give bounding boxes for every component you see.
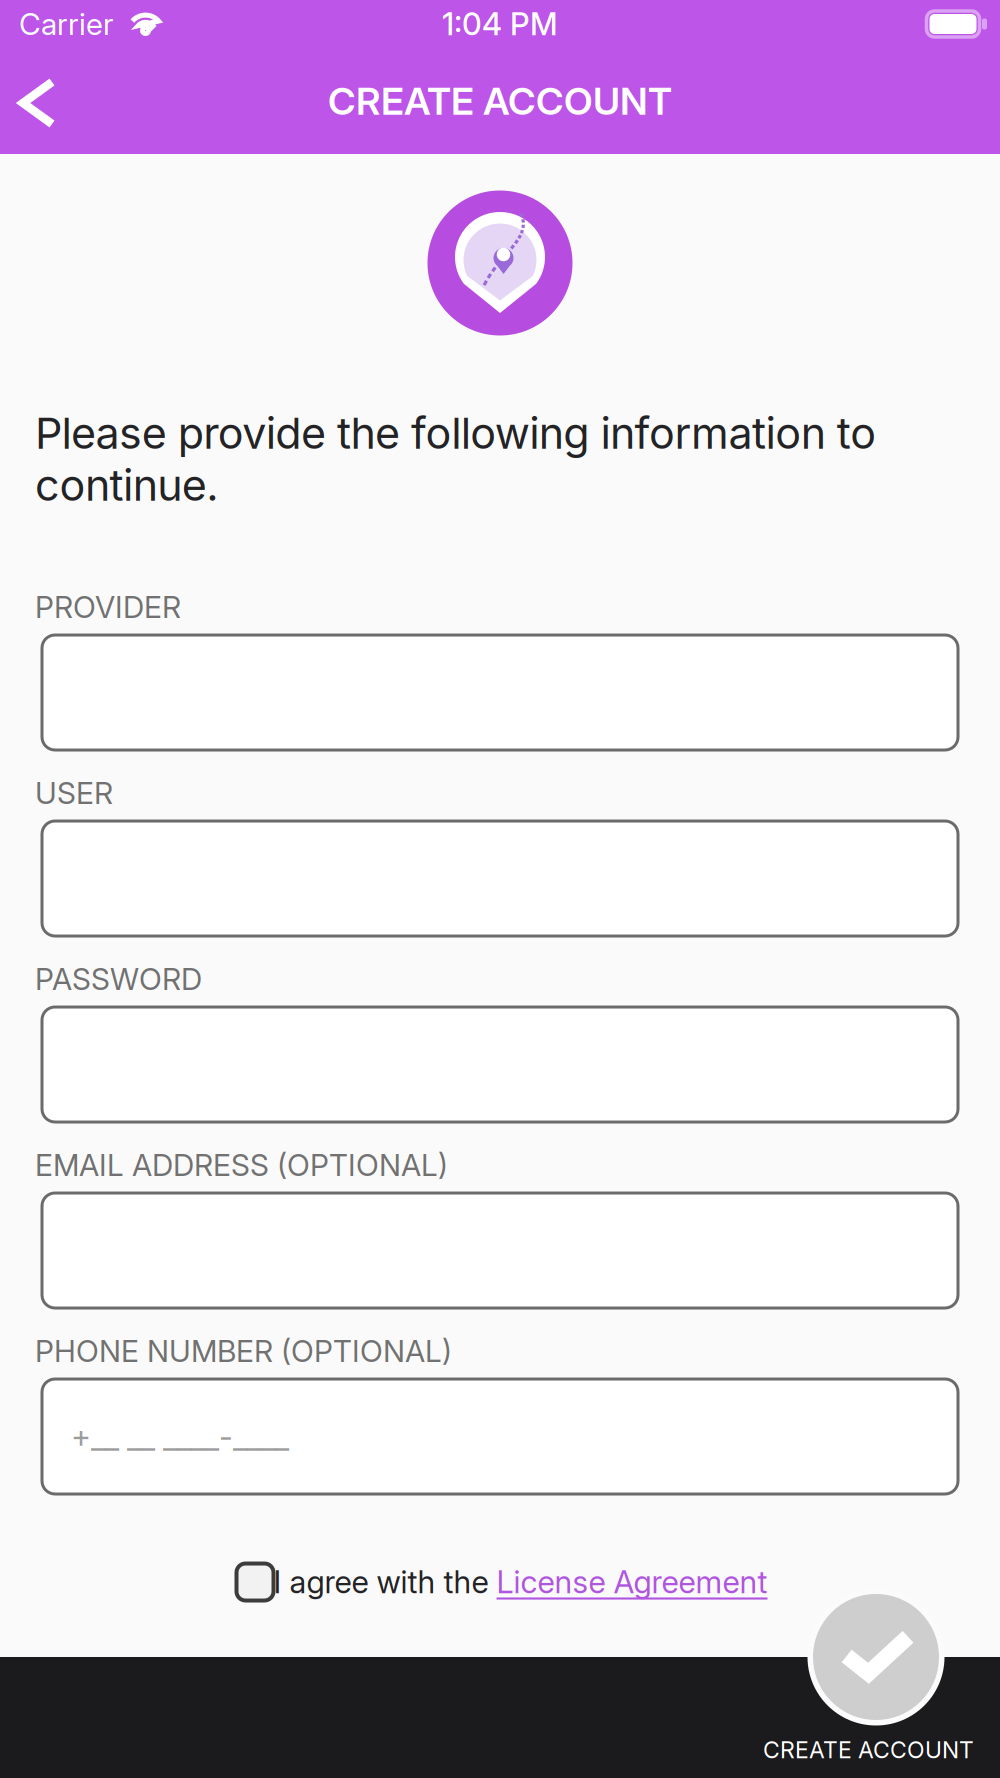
staticText: USER xyxy=(35,775,113,811)
button[interactable]: Back xyxy=(0,52,86,150)
button[interactable]: License Agreement xyxy=(496,1563,767,1601)
staticText: Please provide the following information… xyxy=(35,407,876,511)
staticText: PASSWORD xyxy=(35,961,202,997)
staticText: CREATE ACCOUNT xyxy=(763,1736,974,1764)
staticText: Carrier xyxy=(19,6,114,42)
staticText: 1:04 PM xyxy=(442,5,558,43)
staticText: EMAIL ADDRESS (OPTIONAL) xyxy=(35,1147,448,1183)
staticText: +__ __ ____-____ xyxy=(71,1418,289,1455)
button[interactable]: Create account xyxy=(807,1588,944,1725)
button[interactable]: I agree with the License Agreement xyxy=(236,1563,273,1600)
staticText: PHONE NUMBER (OPTIONAL) xyxy=(35,1333,452,1369)
staticText: PROVIDER xyxy=(35,589,181,625)
staticText: CREATE ACCOUNT xyxy=(328,78,672,124)
staticText: License Agreement xyxy=(496,1563,767,1601)
staticText: I agree with the xyxy=(273,1563,496,1601)
